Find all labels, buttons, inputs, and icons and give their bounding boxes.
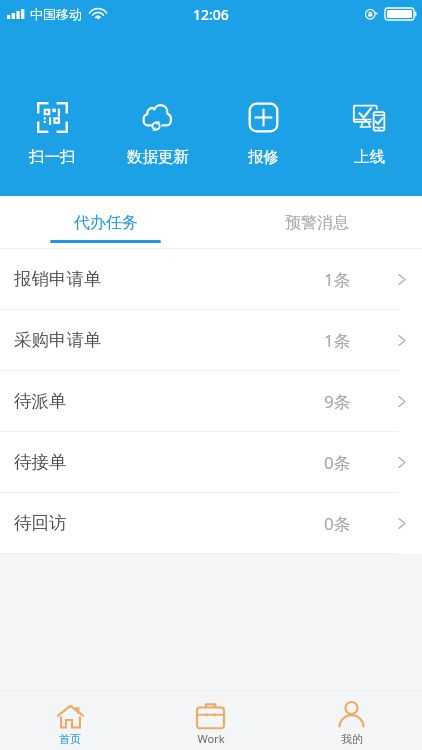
staticText: 待接单 — [14, 451, 67, 473]
button[interactable]: 采购申请单 — [0, 310, 422, 371]
button[interactable]: 预警消息 — [211, 196, 422, 248]
button[interactable]: 扫一扫 — [0, 100, 105, 169]
staticText: 上线 — [354, 147, 385, 167]
staticText: 待派单 — [14, 390, 67, 412]
staticText: 报销申请单 — [14, 268, 102, 290]
button[interactable]: 报销申请单 — [0, 249, 422, 310]
button[interactable]: 待派单 — [0, 371, 422, 432]
button[interactable]: Work — [140, 691, 281, 750]
staticText: 12:06 — [193, 5, 229, 24]
button[interactable]: 待回访 — [0, 493, 422, 554]
button[interactable]: 上线 — [316, 100, 422, 169]
button[interactable]: 报修 — [210, 100, 316, 169]
staticText: 首页 — [59, 732, 81, 746]
staticText: Work — [197, 731, 225, 746]
button[interactable]: 首页 — [0, 691, 140, 750]
button[interactable]: 数据更新 — [105, 100, 210, 169]
staticText: 0条 — [324, 451, 351, 474]
staticText: 中国移动 — [30, 6, 82, 22]
button[interactable]: 代办任务 — [0, 196, 211, 248]
staticText: 采购申请单 — [14, 329, 102, 351]
staticText: 报修 — [248, 147, 279, 167]
staticText: 代办任务 — [74, 213, 138, 233]
staticText: 待回访 — [14, 512, 67, 534]
staticText: 我的 — [341, 732, 363, 746]
staticText: 9条 — [324, 390, 351, 413]
staticText: 0条 — [324, 512, 351, 535]
staticText: 扫一扫 — [29, 147, 76, 167]
staticText: 数据更新 — [127, 147, 189, 167]
button[interactable]: 我的 — [281, 691, 422, 750]
staticText: 1条 — [324, 268, 351, 291]
button[interactable]: 待接单 — [0, 432, 422, 493]
staticText: 预警消息 — [285, 213, 349, 233]
staticText: 1条 — [324, 329, 351, 352]
